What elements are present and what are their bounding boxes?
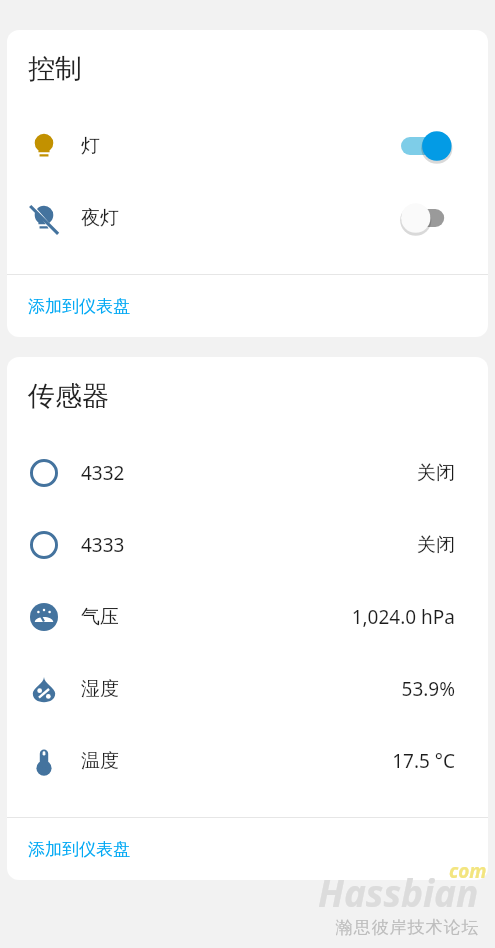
staticText: 气压 [81, 605, 119, 629]
button[interactable]: 添加到仪表盘 [7, 818, 488, 880]
staticText: 添加到仪表盘 [28, 839, 130, 860]
button[interactable]: 气压 [7, 581, 488, 653]
button[interactable]: 温度 [7, 725, 488, 797]
staticText: 控制 [28, 52, 82, 86]
staticText: 温度 [81, 749, 119, 773]
staticText: 夜灯 [81, 206, 119, 230]
staticText: 关闭 [417, 461, 455, 485]
other: 湿度 [30, 675, 58, 703]
other: 温度 [30, 747, 58, 775]
staticText: Hassbian [318, 867, 479, 917]
staticText: 1,024.0 hPa [351, 604, 455, 630]
other: 夜灯 [29, 203, 59, 233]
button[interactable]: 夜灯 [401, 202, 455, 234]
staticText: 关闭 [417, 533, 455, 557]
other: 灯 [29, 131, 59, 161]
staticText: com [449, 858, 487, 884]
staticText: 4333 [81, 532, 125, 558]
button[interactable]: 传感器 [7, 509, 488, 581]
button[interactable]: 灯 [7, 110, 488, 182]
other: 传感器 [30, 459, 58, 487]
button[interactable]: 夜灯 [7, 182, 488, 254]
staticText: 53.9% [401, 676, 455, 702]
button[interactable]: 湿度 [7, 653, 488, 725]
staticText: 添加到仪表盘 [28, 296, 130, 317]
other: 传感器 [30, 531, 58, 559]
staticText: 湿度 [81, 677, 119, 701]
staticText: 传感器 [28, 379, 109, 413]
staticText: 灯 [81, 134, 100, 158]
staticText: 4332 [81, 460, 125, 486]
other: 气压 [30, 603, 58, 631]
button[interactable]: 添加到仪表盘 [7, 275, 488, 337]
button[interactable]: 灯 [401, 130, 455, 162]
staticText: 瀚思彼岸技术论坛 [335, 917, 479, 938]
button[interactable]: 传感器 [7, 437, 488, 509]
staticText: 17.5 °C [392, 748, 455, 774]
